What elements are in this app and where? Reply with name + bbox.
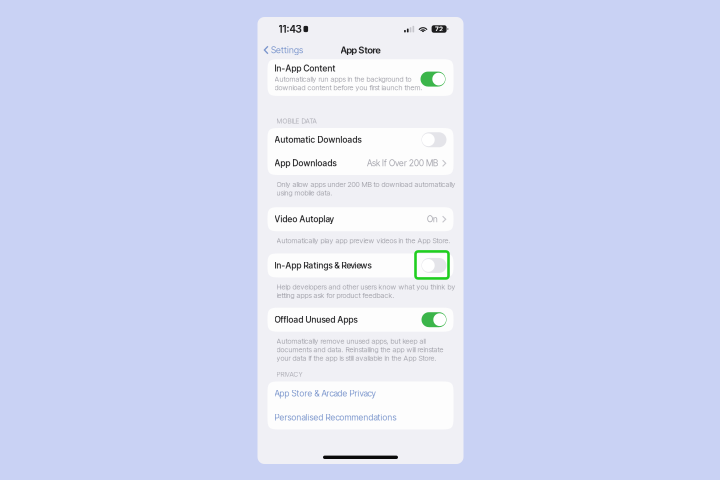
staticText: Settings <box>271 45 303 55</box>
staticText: download content before you first launch… <box>274 83 422 92</box>
staticText: 72 <box>435 25 443 33</box>
staticText: Automatically play app preview videos in… <box>276 236 450 245</box>
staticText: Ask If Over 200 MB <box>367 158 438 168</box>
staticText: Automatic Downloads <box>274 135 361 145</box>
staticText: PRIVACY <box>276 370 302 378</box>
button[interactable]: App Downloads <box>267 151 453 175</box>
button[interactable]: Personalised Recommendations <box>267 405 453 429</box>
staticText: On <box>427 214 438 224</box>
button[interactable]: Settings <box>257 42 303 58</box>
staticText: Personalised Recommendations <box>274 412 396 423</box>
button[interactable]: Automatic Downloads <box>267 128 453 151</box>
staticText: In-App Content <box>274 63 335 73</box>
button[interactable]: Offload Unused Apps <box>267 308 453 332</box>
staticText: Video Autoplay <box>274 214 333 224</box>
staticText: 11:43 <box>278 23 301 35</box>
staticText: documents and data. Reinstalling the app… <box>276 345 443 354</box>
staticText: Only allow apps under 200 MB to download… <box>276 180 455 189</box>
staticText: Offload Unused Apps <box>274 314 357 325</box>
staticText: MOBILE DATA <box>276 117 316 125</box>
button[interactable]: Video Autoplay <box>267 207 453 231</box>
staticText: Automatically remove unused apps, but ke… <box>276 337 425 345</box>
staticText: App Store <box>340 44 380 56</box>
staticText: Help developers and other users know wha… <box>276 282 455 291</box>
button[interactable]: App Store & Arcade Privacy <box>267 381 453 405</box>
staticText: letting apps ask for product feedback. <box>276 291 394 300</box>
staticText: using mobile data. <box>276 188 332 197</box>
staticText: Automatically run apps in the background… <box>274 75 411 83</box>
staticText: your data if the app is still available … <box>276 354 436 362</box>
button[interactable]: In-App Ratings & Reviews <box>267 253 453 277</box>
staticText: App Store & Arcade Privacy <box>274 388 375 399</box>
staticText: App Downloads <box>274 158 336 168</box>
staticText: In-App Ratings & Reviews <box>274 260 371 271</box>
